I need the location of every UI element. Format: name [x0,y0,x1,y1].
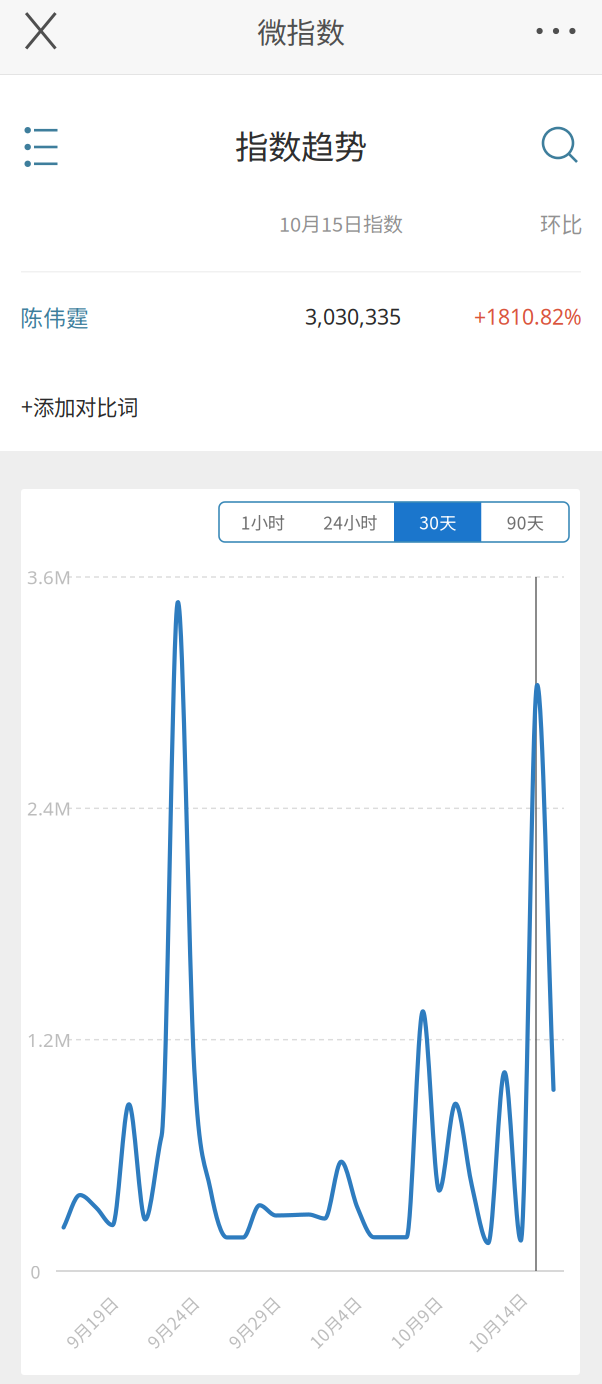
staticText: 10月15日指数 [279,208,403,237]
staticText: 9月29日 [222,1309,286,1335]
staticText: 10月14日 [460,1309,534,1335]
staticText: 9月24日 [141,1309,205,1335]
button[interactable]: 90天 [481,502,569,542]
button[interactable]: 24小时 [306,502,394,542]
staticText: 3.6M [27,565,71,589]
staticText: 环比 [540,208,582,238]
button[interactable]: Compare words [8,111,73,183]
staticText: 0 [30,1260,40,1283]
staticText: 1小时 [241,509,285,535]
button[interactable]: 30天 [394,502,481,542]
staticText: 指数趋势 [235,121,367,169]
staticText: +添加对比词 [21,391,138,421]
button[interactable]: 1小时 [219,502,306,542]
staticText: 30天 [419,509,456,535]
button[interactable]: Search [528,112,592,178]
button[interactable]: 陈伟霆 [0,272,602,361]
staticText: 3,030,335 [305,302,401,331]
staticText: 微指数 [257,10,344,52]
staticText: 1.2M [27,1027,71,1052]
staticText: 90天 [507,509,544,535]
button[interactable]: More options [522,0,589,62]
button[interactable]: Close [10,0,71,64]
staticText: 9月19日 [59,1309,123,1335]
button[interactable]: +添加对比词 [0,361,602,451]
staticText: 2.4M [27,796,71,821]
staticText: 24小时 [323,509,377,535]
staticText: +1810.82% [474,302,582,331]
staticText: 陈伟霆 [20,300,89,333]
staticText: 10月4日 [303,1309,367,1335]
staticText: 10月9日 [384,1309,448,1335]
